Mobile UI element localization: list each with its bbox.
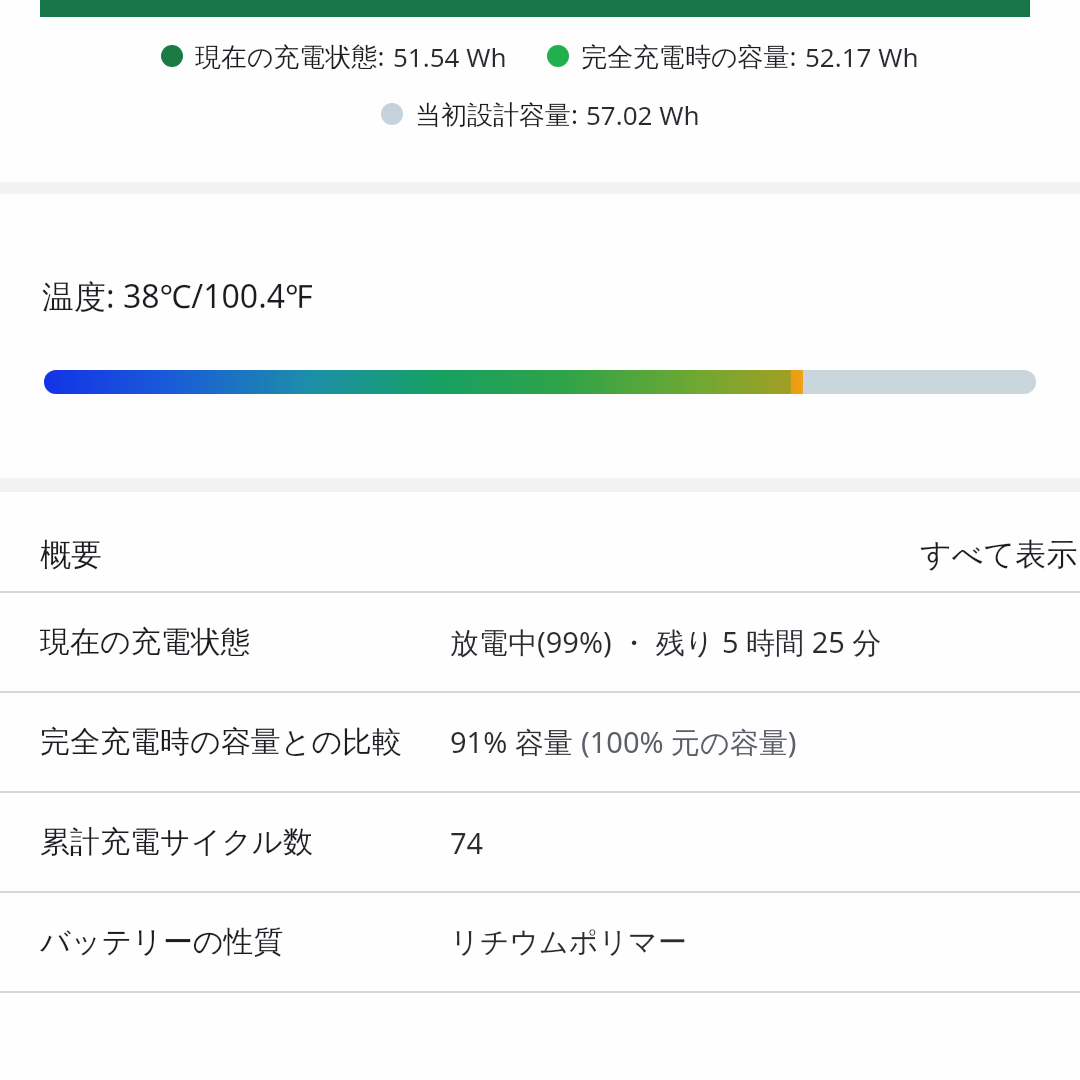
staticText: 74 xyxy=(450,823,484,862)
button[interactable]: 現在の充電状態 xyxy=(0,593,1080,691)
staticText: 現在の充電状態 xyxy=(40,623,251,661)
staticText: 52.17 Wh xyxy=(805,39,919,74)
button[interactable]: 完全充電時の容量との比較 xyxy=(0,693,1080,791)
staticText: リチウムポリマー xyxy=(450,924,687,961)
staticText: 当初設計容量: xyxy=(415,96,578,132)
staticText: 概要 xyxy=(40,535,102,574)
staticText: 91% 容量 xyxy=(450,722,581,762)
staticText: (100% 元の容量) xyxy=(581,722,797,762)
staticText: 完全充電時の容量との比較 xyxy=(40,723,403,761)
staticText: バッテリーの性質 xyxy=(40,923,284,961)
staticText: 51.54 Wh xyxy=(393,39,507,74)
staticText: 累計充電サイクル数 xyxy=(40,823,313,861)
staticText: 57.02 Wh xyxy=(586,97,700,132)
staticText: 温度: 38℃/100.4℉ xyxy=(42,274,314,318)
staticText: 放電中(99%) ・ 残り 5 時間 25 分 xyxy=(450,622,882,662)
staticText: すべて表示 xyxy=(920,535,1078,574)
staticText: 現在の充電状態: xyxy=(195,38,385,74)
button[interactable]: 概要 xyxy=(0,492,1080,584)
staticText: 完全充電時の容量: xyxy=(581,38,797,74)
button[interactable]: 累計充電サイクル数 xyxy=(0,793,1080,891)
button[interactable]: バッテリーの性質 xyxy=(0,893,1080,991)
